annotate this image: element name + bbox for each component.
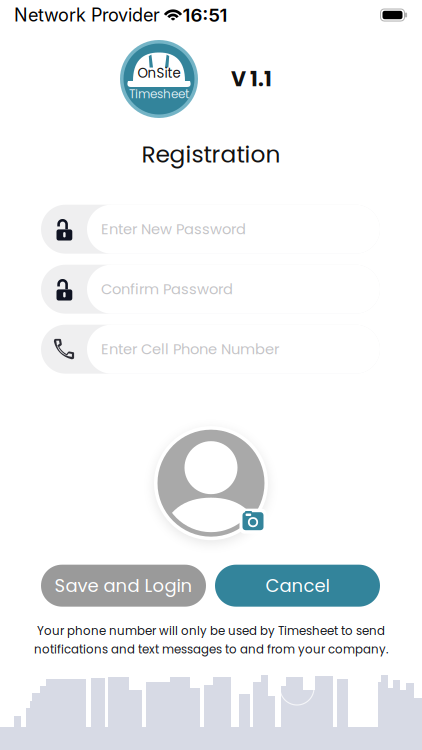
staticText: Cancel <box>265 573 329 598</box>
staticText: V 1.1 <box>231 64 272 93</box>
staticText: OnSite <box>137 64 180 82</box>
staticText: 16:51 <box>182 4 227 26</box>
staticText: Timesheet <box>129 86 189 102</box>
staticText: Save and Login <box>54 573 192 598</box>
button[interactable]: Cancel <box>215 565 380 607</box>
staticText: Your phone number will only be used by T… <box>37 623 385 639</box>
staticText: Registration <box>141 138 280 171</box>
button[interactable]: Change profile photo <box>239 509 266 534</box>
button[interactable]: Confirm Password <box>41 265 380 314</box>
button[interactable]: Enter Cell Phone Number <box>41 325 380 374</box>
button[interactable]: Save and Login <box>41 565 206 607</box>
staticText: Network Provider <box>14 4 160 26</box>
button[interactable]: Enter New Password <box>41 205 380 254</box>
staticText: Enter New Password <box>101 219 246 239</box>
staticText: Confirm Password <box>101 279 233 299</box>
staticText: Enter Cell Phone Number <box>101 339 279 359</box>
staticText: notifications and text messages to and f… <box>34 641 388 657</box>
